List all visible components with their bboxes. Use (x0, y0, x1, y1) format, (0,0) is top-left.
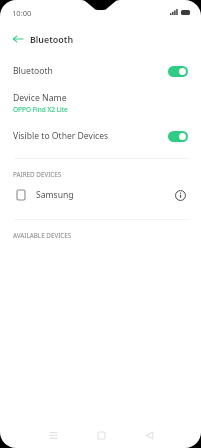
button[interactable]: Back (0, 26, 30, 52)
button[interactable]: Device Name (0, 84, 201, 123)
staticText: Bluetooth (30, 33, 74, 45)
staticText: Device Name (13, 92, 67, 104)
staticText: OPPO Find X2 Lite (13, 105, 68, 114)
button[interactable]: Bluetooth (0, 58, 201, 84)
button[interactable]: Recent apps (41, 423, 65, 447)
staticText: Bluetooth (13, 65, 53, 77)
staticText: Samsung (36, 189, 74, 201)
staticText: 10:00 (12, 8, 32, 18)
button[interactable]: Samsung (0, 185, 201, 205)
staticText: PAIRED DEVICES (13, 170, 62, 179)
button[interactable]: Visible to Other Devices (0, 123, 201, 149)
button[interactable]: Back (137, 423, 161, 447)
staticText: Visible to Other Devices (13, 130, 109, 142)
staticText: AVAILABLE DEVICES (13, 231, 72, 240)
button[interactable]: Home (89, 423, 113, 447)
button[interactable]: Device info (172, 187, 188, 203)
